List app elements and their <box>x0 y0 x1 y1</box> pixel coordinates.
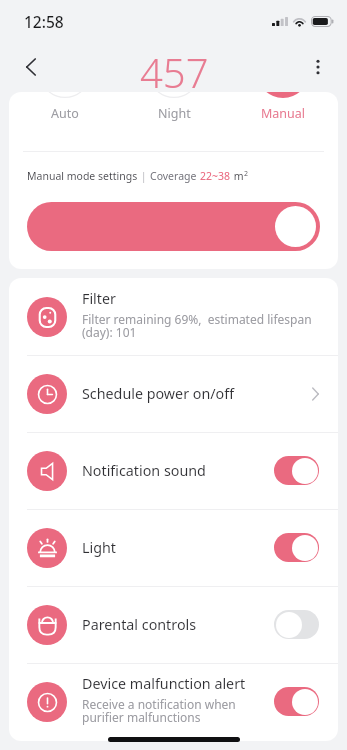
staticText: Notification sound <box>82 461 206 480</box>
staticText: Device malfunction alert <box>82 674 246 693</box>
button[interactable]: Notification sound <box>9 432 338 509</box>
button[interactable]: Fan speed slider <box>27 202 320 251</box>
button[interactable]: Device malfunction alert <box>274 687 319 716</box>
button[interactable]: Schedule power on/off <box>9 355 338 432</box>
button[interactable]: Device malfunction alert <box>9 663 338 740</box>
button[interactable]: Light <box>9 509 338 586</box>
staticText: Coverage <box>150 169 200 183</box>
button[interactable]: Parental controls <box>9 586 338 663</box>
staticText: 457 <box>140 45 209 95</box>
staticText: Manual <box>261 105 306 122</box>
staticText: m <box>231 169 244 183</box>
staticText: Parental controls <box>82 615 197 634</box>
button[interactable]: More options <box>299 48 337 86</box>
button[interactable]: Parental controls <box>274 610 319 639</box>
staticText: Receive a notification when purifier mal… <box>82 696 236 726</box>
button[interactable]: Back <box>12 48 50 86</box>
button[interactable]: Night <box>148 92 200 98</box>
button[interactable]: Manual <box>257 92 309 98</box>
staticText: 22~38 <box>200 169 231 183</box>
staticText: Filter <box>82 289 116 308</box>
staticText: Schedule power on/off <box>82 384 235 403</box>
staticText: Manual mode settings <box>27 169 138 183</box>
button[interactable]: Auto <box>39 92 91 98</box>
button[interactable]: Light <box>274 533 319 562</box>
button[interactable]: Notification sound <box>274 456 319 485</box>
staticText: | <box>138 169 150 183</box>
staticText: 2 <box>244 169 249 179</box>
staticText: Filter remaining 69%, estimated lifespan… <box>82 311 312 341</box>
staticText: Night <box>158 105 191 122</box>
staticText: Light <box>82 538 116 557</box>
button[interactable]: Filter <box>9 278 338 355</box>
staticText: Auto <box>51 105 79 122</box>
staticText: 12:58 <box>24 11 64 32</box>
